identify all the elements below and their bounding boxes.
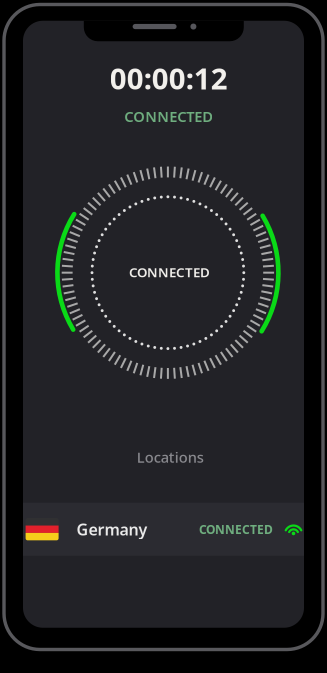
button[interactable]: Germany <box>23 503 304 556</box>
staticText: Locations <box>137 447 204 467</box>
staticText: Germany <box>77 519 148 540</box>
staticText: CONNECTED <box>129 263 210 281</box>
staticText: 00:00:12 <box>110 59 228 98</box>
staticText: CONNECTED <box>124 106 213 126</box>
staticText: CONNECTED <box>199 521 273 537</box>
